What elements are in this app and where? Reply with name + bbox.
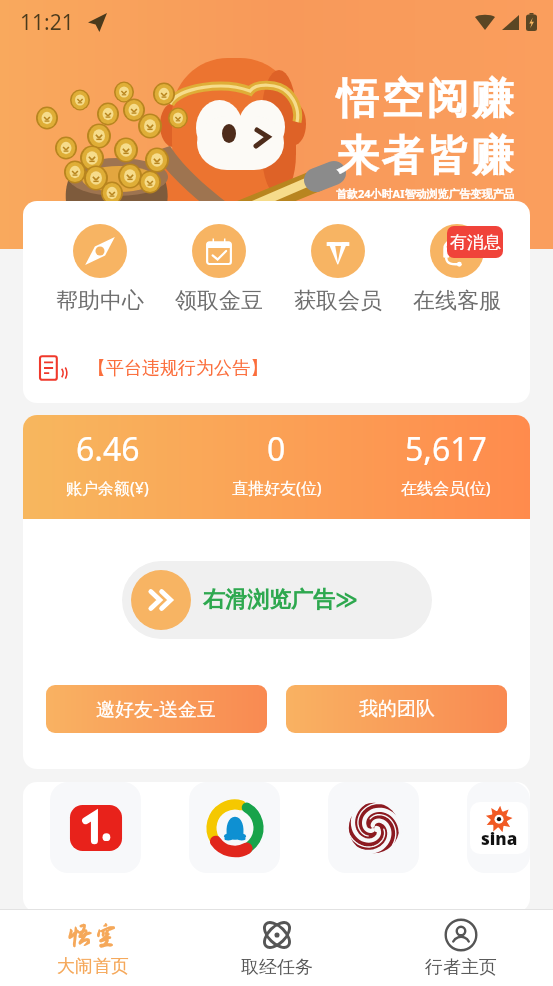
button[interactable]: 【平台违规行为公告】: [39, 343, 530, 393]
staticText: 大闹首页: [57, 955, 129, 978]
button[interactable]: 行者主页: [369, 910, 553, 986]
staticText: 0: [267, 427, 286, 471]
staticText: 账户余额(¥): [66, 477, 149, 499]
button[interactable]: 5,617: [361, 427, 530, 499]
staticText: 在线客服: [413, 287, 501, 315]
staticText: 帮助中心: [56, 287, 144, 315]
staticText: 直推好友(位): [232, 477, 322, 499]
staticText: 领取金豆: [175, 287, 263, 315]
button[interactable]: 1号店: [50, 782, 141, 873]
staticText: 首款24小时AI智动浏览广告变现产品: [336, 186, 515, 201]
staticText: 获取会员: [294, 287, 382, 315]
button[interactable]: 获取会员: [278, 222, 397, 317]
staticText: 行者主页: [425, 956, 497, 979]
staticText: 在线会员(位): [401, 477, 491, 499]
button[interactable]: 邀好友-送金豆: [46, 685, 267, 733]
button[interactable]: 0: [192, 427, 361, 499]
button[interactable]: 右滑浏览广告≫: [122, 561, 432, 639]
button[interactable]: QQ浏览器: [189, 782, 280, 873]
button[interactable]: 领取金豆: [159, 222, 278, 317]
staticText: 右滑浏览广告≫: [203, 586, 359, 614]
button[interactable]: 帮助中心: [40, 222, 159, 317]
button[interactable]: 6.46: [23, 427, 192, 499]
staticText: 来者皆赚: [335, 130, 515, 183]
staticText: 11:21: [20, 8, 74, 37]
staticText: 有消息: [450, 232, 501, 253]
button[interactable]: 我的团队: [286, 685, 507, 733]
staticText: 邀好友-送金豆: [96, 696, 217, 722]
button[interactable]: 悟空: [0, 910, 185, 986]
staticText: 我的团队: [359, 697, 435, 721]
staticText: 5,617: [405, 427, 487, 471]
button[interactable]: 取经任务: [185, 910, 369, 986]
staticText: 悟空: [67, 921, 120, 950]
staticText: 【平台违规行为公告】: [88, 357, 268, 380]
button[interactable]: 凤凰新闻: [328, 782, 419, 873]
button[interactable]: 有消息: [397, 222, 516, 317]
staticText: 悟空阅赚: [335, 73, 515, 126]
staticText: sina: [481, 827, 518, 850]
staticText: 取经任务: [241, 956, 313, 979]
staticText: 6.46: [76, 427, 140, 471]
button[interactable]: 新浪新闻: [467, 782, 530, 873]
